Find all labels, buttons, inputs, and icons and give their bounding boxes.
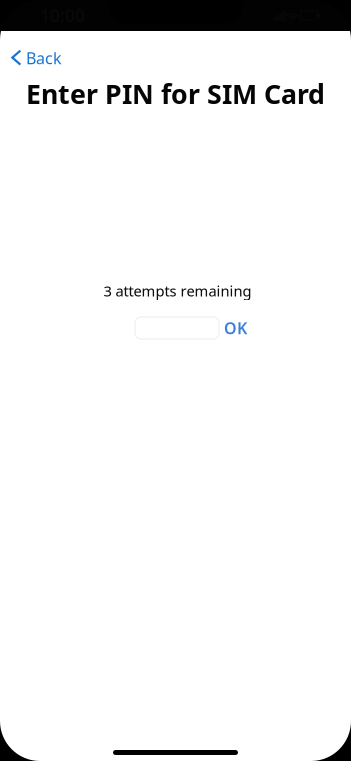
staticText: Enter PIN for SIM Card: [26, 76, 325, 111]
button[interactable]: OK: [224, 317, 247, 339]
button[interactable]: PIN: [135, 317, 219, 339]
staticText: 3 attempts remaining: [103, 281, 251, 300]
staticText: Back: [26, 47, 62, 69]
button[interactable]: Back: [0, 44, 72, 72]
staticText: OK: [224, 317, 247, 339]
